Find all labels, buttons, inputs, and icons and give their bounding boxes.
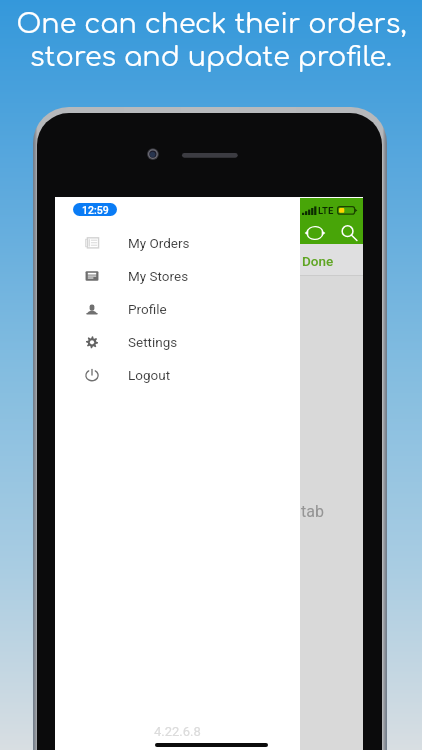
staticText: LTE	[318, 205, 334, 216]
staticText: Logout	[128, 367, 171, 383]
button[interactable]: My Stores	[55, 259, 300, 292]
button[interactable]: Profile	[55, 292, 300, 325]
staticText: One can check their orders,	[16, 9, 407, 39]
staticText: Profile	[128, 301, 167, 317]
staticText: Done	[302, 253, 334, 269]
staticText: 4.22.6.8	[154, 724, 201, 739]
button[interactable]: Refresh	[300, 217, 329, 244]
staticText: stores and update profile.	[30, 42, 392, 72]
staticText: My Stores	[128, 268, 189, 284]
staticText: Settings	[128, 334, 178, 350]
button[interactable]: My Orders	[55, 226, 300, 259]
button[interactable]: Search	[334, 217, 363, 244]
button[interactable]: Settings	[55, 325, 300, 358]
staticText: tab	[301, 502, 324, 521]
button[interactable]: Logout	[55, 358, 300, 391]
staticText: My Orders	[128, 235, 190, 251]
staticText: 12:59	[82, 204, 109, 216]
